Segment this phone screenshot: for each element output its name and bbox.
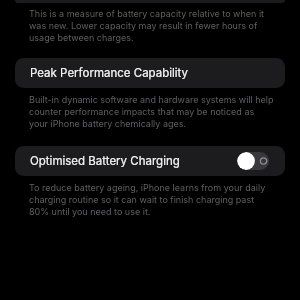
button[interactable]: Optimised Battery Charging — [15, 146, 285, 176]
staticText: Built-in dynamic software and hardware s… — [29, 94, 275, 129]
staticText: To reduce battery ageing, iPhone learns … — [29, 182, 275, 217]
button[interactable]: Optimised Battery Charging, off — [237, 152, 269, 170]
staticText: Peak Performance Capability — [30, 66, 189, 80]
button[interactable]: Peak Performance Capability — [15, 58, 285, 88]
staticText: This is a measure of battery capacity re… — [29, 8, 275, 43]
staticText: Optimised Battery Charging — [30, 154, 180, 168]
